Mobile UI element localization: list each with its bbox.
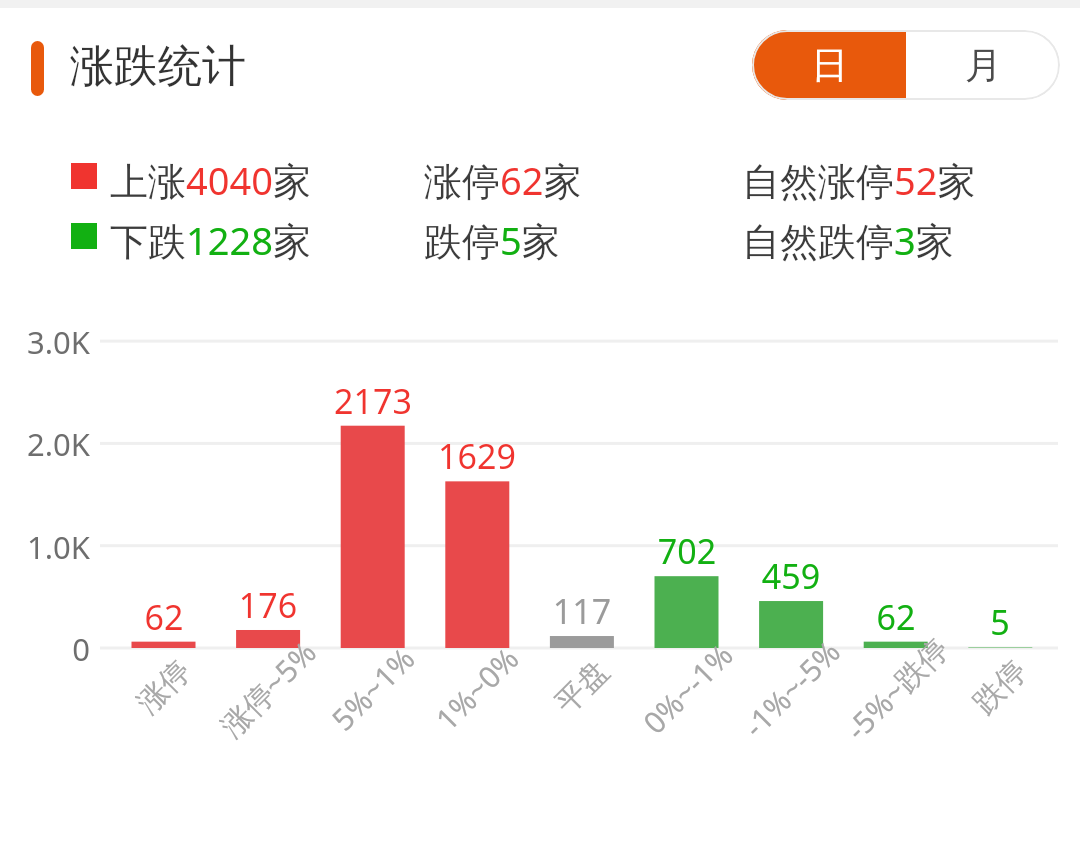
button[interactable]: 月 <box>906 30 1060 100</box>
staticText: 2173 <box>303 378 443 424</box>
staticText: 176 <box>198 582 338 628</box>
staticText: 3.0K <box>8 321 90 363</box>
staticText: 1%~0% <box>426 638 527 739</box>
staticText: 62 <box>94 594 234 640</box>
staticText: -1%~-5% <box>734 631 849 746</box>
staticText: 跌停 <box>965 652 1035 722</box>
staticText: 月 <box>965 42 1002 89</box>
staticText: 跌停5家 <box>424 214 560 266</box>
staticText: 0%~-1% <box>634 635 741 742</box>
staticText: 0 <box>8 628 90 670</box>
staticText: -5%~跌停 <box>836 628 957 749</box>
staticText: 日 <box>811 42 848 89</box>
button[interactable]: 日 <box>752 30 906 100</box>
staticText: 1629 <box>407 433 547 479</box>
staticText: 702 <box>617 528 757 574</box>
staticText: 涨停~5% <box>211 632 325 745</box>
staticText: 2.0K <box>8 423 90 465</box>
staticText: 自然涨停52家 <box>742 154 976 206</box>
staticText: 上涨4040家 <box>110 154 311 206</box>
staticText: 下跌1228家 <box>110 214 311 266</box>
staticText: 5 <box>930 599 1070 645</box>
staticText: 5%~1% <box>322 638 423 739</box>
staticText: 459 <box>721 553 861 599</box>
staticText: 平盘 <box>547 652 617 722</box>
staticText: 涨停62家 <box>424 154 582 206</box>
staticText: 涨停 <box>129 652 199 722</box>
staticText: 62 <box>826 594 966 640</box>
staticText: 1.0K <box>8 526 90 568</box>
staticText: 117 <box>512 588 652 634</box>
staticText: 涨跌统计 <box>70 39 246 94</box>
staticText: 自然跌停3家 <box>742 214 954 266</box>
